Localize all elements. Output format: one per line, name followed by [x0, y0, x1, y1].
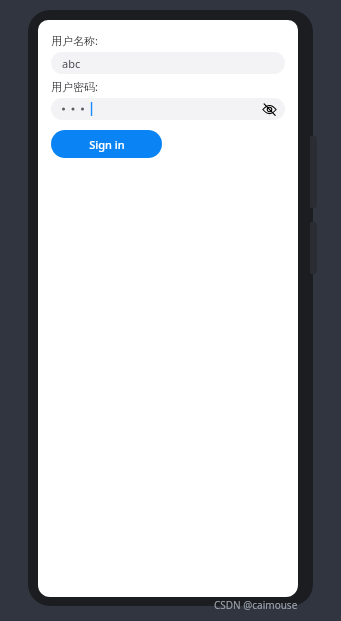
staticText: 用户名称:: [51, 33, 98, 48]
button[interactable]: Show password: [258, 98, 280, 120]
staticText: CSDN @caimouse: [214, 598, 298, 612]
button[interactable]: Sign in: [51, 130, 162, 158]
staticText: 用户密码:: [51, 79, 98, 94]
button[interactable]: Show password: [51, 98, 285, 120]
staticText: abc: [62, 56, 81, 71]
button[interactable]: abc: [51, 52, 285, 74]
staticText: Sign in: [89, 137, 125, 152]
